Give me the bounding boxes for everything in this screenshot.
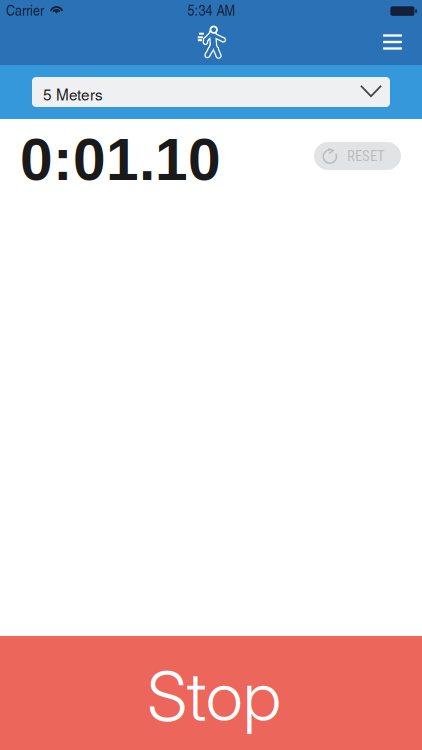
staticText: 5:34 AM [187, 0, 235, 20]
staticText: Stop [147, 655, 281, 737]
staticText: RESET [347, 147, 385, 165]
staticText: Carrier [6, 0, 44, 20]
button[interactable]: RESET [314, 142, 401, 170]
button[interactable]: Stop [0, 636, 422, 750]
button[interactable]: Menu [369, 21, 422, 63]
button[interactable]: 5 Meters [32, 77, 390, 107]
staticText: 5 Meters [43, 83, 103, 105]
staticText: 0:01.10 [20, 127, 221, 192]
